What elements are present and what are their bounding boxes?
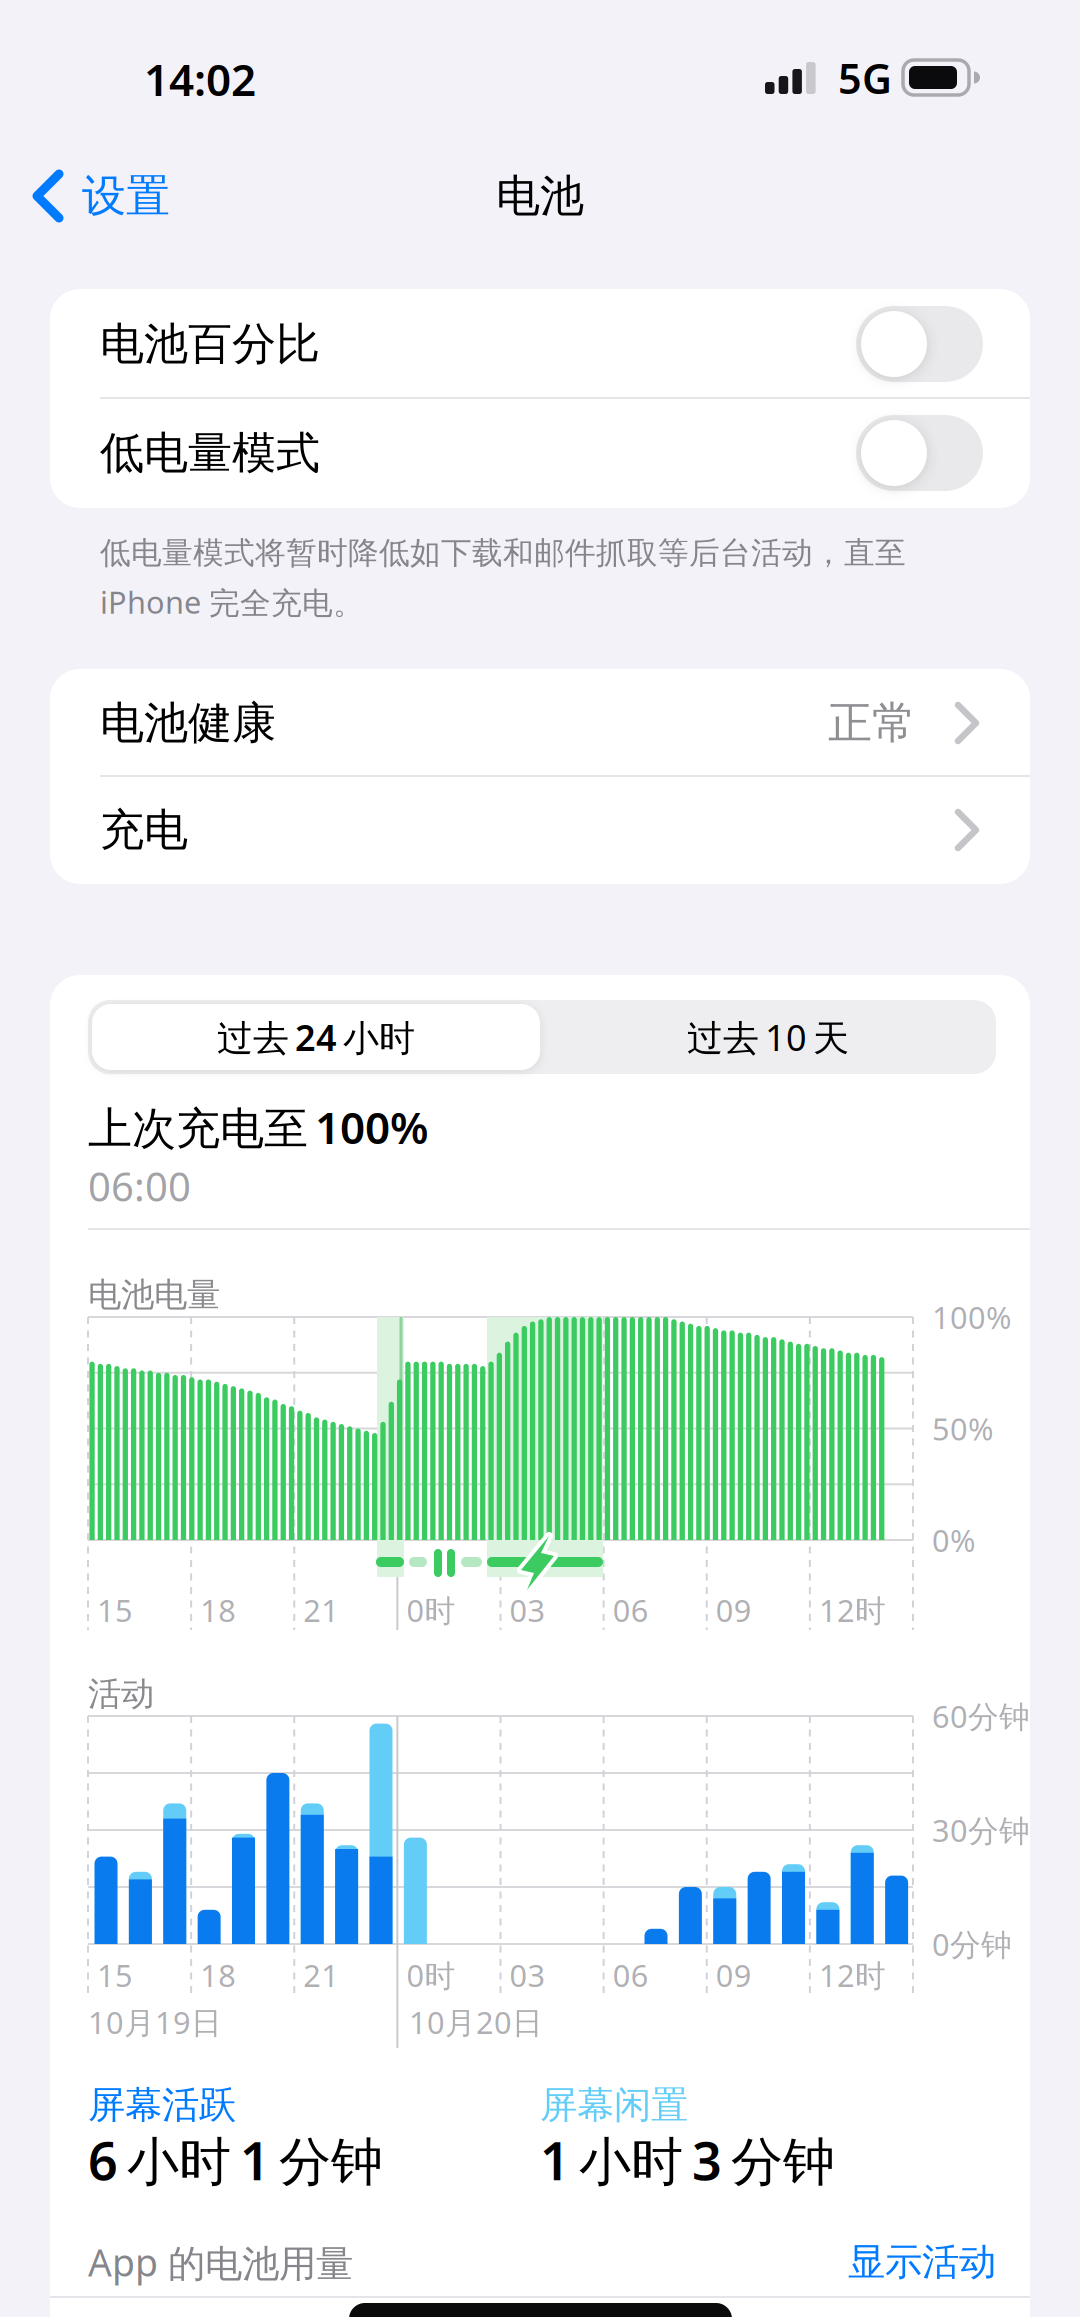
- button[interactable]: 返回设置: [32, 169, 170, 223]
- staticText: 0分钟: [932, 1924, 1012, 1964]
- staticText: 15: [97, 1590, 133, 1630]
- staticText: 低电量模式: [100, 426, 320, 480]
- staticText: 06: [613, 1955, 649, 1995]
- staticText: 10月20日: [409, 2002, 543, 2042]
- staticText: 5G: [838, 51, 892, 105]
- staticText: 21: [303, 1590, 339, 1630]
- staticText: 06: [613, 1590, 649, 1630]
- button[interactable]: 充电: [50, 777, 1030, 883]
- staticText: 显示活动: [848, 2239, 996, 2285]
- staticText: 过去 24 小时: [217, 1013, 415, 1061]
- staticText: 电池电量: [88, 1274, 220, 1315]
- staticText: 18: [200, 1590, 236, 1630]
- staticText: 低电量模式将暂时降低如下载和邮件抓取等后台活动，直至: [100, 534, 906, 572]
- staticText: 14:02: [144, 50, 256, 108]
- staticText: 10月19日: [88, 2002, 222, 2042]
- staticText: 正常: [828, 696, 916, 750]
- staticText: 09: [716, 1955, 752, 1995]
- staticText: 21: [303, 1955, 339, 1995]
- staticText: 电池百分比: [100, 317, 320, 371]
- staticText: 上次充电至 100%: [88, 1098, 429, 1156]
- staticText: App 的电池用量: [88, 2237, 353, 2287]
- staticText: 03: [509, 1590, 545, 1630]
- button[interactable]: 显示活动: [848, 2239, 996, 2285]
- staticText: 06:00: [88, 1159, 191, 1212]
- staticText: 30分钟: [932, 1810, 1030, 1850]
- staticText: 6 小时 1 分钟: [88, 2125, 383, 2195]
- staticText: 100%: [932, 1297, 1011, 1337]
- staticText: 12时: [819, 1590, 886, 1630]
- staticText: 电池: [496, 169, 584, 223]
- staticText: 0时: [406, 1955, 455, 1995]
- staticText: 0%: [932, 1520, 975, 1560]
- staticText: iPhone 完全充电。: [100, 582, 364, 622]
- staticText: 1 小时 3 分钟: [540, 2125, 835, 2195]
- staticText: 03: [509, 1955, 545, 1995]
- button[interactable]: 低电量模式: [50, 399, 1030, 507]
- staticText: 活动: [88, 1673, 154, 1714]
- button[interactable]: 电池百分比: [50, 290, 1030, 398]
- button[interactable]: 过去24小时: [92, 1004, 540, 1070]
- staticText: 充电: [100, 803, 188, 857]
- button[interactable]: 电池健康: [50, 670, 1030, 776]
- staticText: 09: [716, 1590, 752, 1630]
- staticText: 屏幕活跃: [88, 2082, 236, 2128]
- staticText: 12时: [819, 1955, 886, 1995]
- staticText: 15: [97, 1955, 133, 1995]
- staticText: 50%: [932, 1408, 993, 1449]
- staticText: 0时: [406, 1590, 455, 1630]
- staticText: 设置: [82, 169, 170, 223]
- staticText: 电池健康: [100, 696, 276, 750]
- staticText: 60分钟: [932, 1696, 1030, 1736]
- staticText: 18: [200, 1955, 236, 1995]
- staticText: 屏幕闲置: [540, 2082, 688, 2128]
- button[interactable]: 过去10天: [544, 1004, 992, 1070]
- staticText: 过去 10 天: [687, 1013, 849, 1061]
